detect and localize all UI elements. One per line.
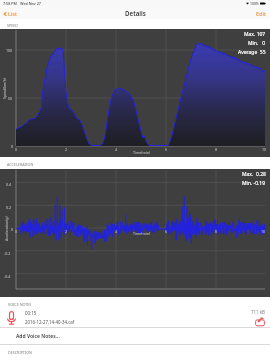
staticText: 0 — [15, 147, 18, 152]
staticText: Speed(km/h) — [2, 78, 7, 99]
staticText: 00:15 — [25, 310, 37, 316]
staticText: 0.4 — [6, 182, 12, 187]
button[interactable]: 00:15 — [0, 308, 270, 327]
button[interactable]: Edit — [252, 8, 270, 19]
staticText: Edit — [256, 10, 266, 17]
staticText: Average 55 — [238, 49, 266, 56]
other: Share — [255, 317, 265, 326]
button[interactable]: List — [0, 8, 22, 19]
staticText: Wed Nov 27 — [20, 1, 41, 6]
staticText: 0 — [11, 227, 14, 232]
staticText: 8 — [215, 147, 218, 152]
staticText: 50 — [8, 96, 13, 101]
staticText: 6 — [165, 147, 168, 152]
staticText: Min. 0 — [248, 40, 266, 47]
staticText: 0.2 — [6, 205, 12, 210]
staticText: 0 — [15, 229, 18, 234]
staticText: 4 — [115, 147, 118, 152]
staticText: DESCRIPTION — [8, 350, 32, 355]
staticText: ACCELERATION — [7, 162, 34, 167]
staticText: 8 — [215, 229, 218, 234]
staticText: 4 — [115, 229, 118, 234]
staticText: 2 — [65, 147, 68, 152]
staticText: Time(min) — [133, 150, 150, 155]
staticText: 0 — [11, 144, 14, 149]
staticText: 10 — [262, 147, 267, 152]
staticText: Details — [125, 9, 146, 17]
staticText: -0.2 — [4, 251, 11, 256]
button[interactable]: Add Voice Notes... — [0, 328, 270, 344]
staticText: Min. -0.19 — [242, 180, 266, 187]
staticText: 2016-12-27,14-40-34.caf — [25, 319, 75, 325]
staticText: VOICE NOTES — [8, 302, 32, 307]
staticText: 2 — [65, 229, 68, 234]
staticText: 7:58 PM — [3, 1, 17, 6]
staticText: Max. 0.28 — [242, 171, 266, 178]
staticText: 100% — [250, 1, 259, 6]
staticText: 711 kB — [251, 309, 265, 315]
staticText: 6 — [165, 229, 168, 234]
staticText: Add Voice Notes... — [16, 333, 60, 340]
staticText: 10 — [261, 229, 266, 234]
staticText: Max. 107 — [244, 31, 266, 38]
staticText: Acceleration(g) — [4, 216, 9, 241]
staticText: 100 — [6, 48, 13, 53]
staticText: Time(min) — [133, 231, 150, 236]
staticText: List — [8, 10, 17, 17]
staticText: -0.4 — [4, 274, 11, 279]
staticText: SPEED — [7, 23, 19, 28]
